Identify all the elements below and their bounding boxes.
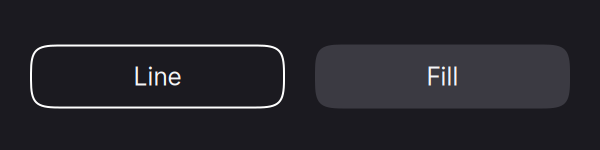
button[interactable]: Fill: [315, 44, 570, 108]
staticText: Line: [133, 62, 181, 91]
staticText: Fill: [426, 62, 458, 91]
button[interactable]: Line: [30, 44, 285, 108]
